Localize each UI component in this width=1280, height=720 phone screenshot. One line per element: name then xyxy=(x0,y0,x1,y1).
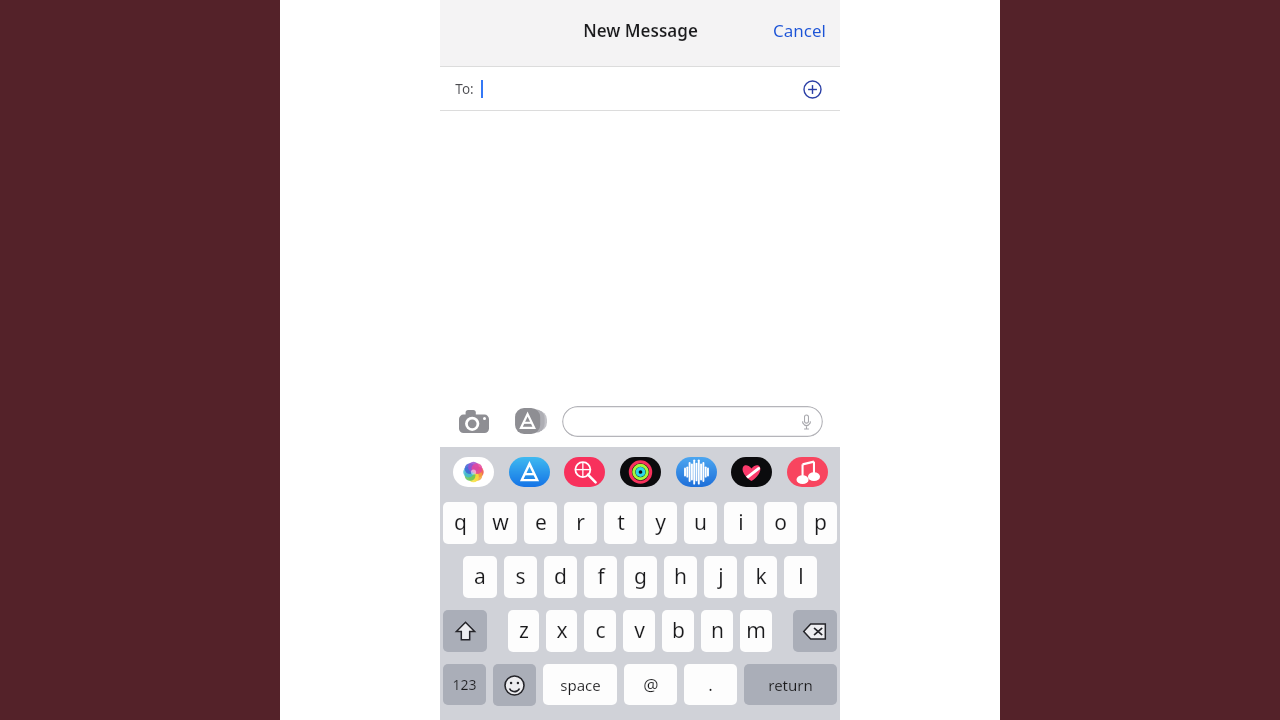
button[interactable]: Emoji xyxy=(493,664,536,706)
button[interactable]: x xyxy=(546,610,577,652)
button[interactable]: u xyxy=(684,502,717,544)
button[interactable]: j xyxy=(704,556,737,598)
staticText: To: xyxy=(455,80,474,98)
button[interactable]: c xyxy=(584,610,616,652)
button[interactable]: Fitness xyxy=(728,455,774,489)
button[interactable]: q xyxy=(443,502,477,544)
button[interactable]: Shift xyxy=(443,610,487,652)
staticText: r xyxy=(576,508,585,537)
staticText: i xyxy=(738,508,744,537)
staticText: return xyxy=(768,675,813,695)
button[interactable]: t xyxy=(604,502,637,544)
staticText: d xyxy=(554,562,567,591)
staticText: New Message xyxy=(583,19,698,42)
button[interactable]: n xyxy=(701,610,733,652)
button[interactable]: Activity xyxy=(617,455,663,489)
staticText: k xyxy=(755,562,767,591)
button[interactable]: p xyxy=(804,502,837,544)
staticText: a xyxy=(474,562,486,591)
staticText: s xyxy=(515,562,526,591)
button[interactable]: a xyxy=(463,556,497,598)
staticText: o xyxy=(774,508,787,537)
staticText: h xyxy=(674,562,687,591)
button[interactable]: o xyxy=(764,502,797,544)
button[interactable]: z xyxy=(508,610,539,652)
staticText: 123 xyxy=(452,675,477,694)
staticText: q xyxy=(454,508,467,537)
staticText: t xyxy=(617,508,625,537)
staticText: Cancel xyxy=(773,19,826,42)
staticText: y xyxy=(655,508,666,537)
staticText: b xyxy=(672,616,685,645)
button[interactable]: l xyxy=(784,556,817,598)
staticText: . xyxy=(708,673,713,696)
staticText: z xyxy=(519,616,529,645)
button[interactable] xyxy=(562,406,823,437)
button[interactable]: m xyxy=(740,610,772,652)
button[interactable]: . xyxy=(684,664,737,705)
button[interactable]: e xyxy=(524,502,557,544)
button[interactable]: s xyxy=(504,556,537,598)
button[interactable]: App Store xyxy=(506,455,552,489)
button[interactable]: Cancel xyxy=(759,10,840,51)
button[interactable]: y xyxy=(644,502,677,544)
button[interactable]: Backspace xyxy=(793,610,837,652)
staticText: g xyxy=(634,562,647,591)
staticText: j xyxy=(718,562,724,591)
button[interactable]: g xyxy=(624,556,657,598)
button[interactable]: @ xyxy=(624,664,677,705)
button[interactable]: h xyxy=(664,556,697,598)
staticText: p xyxy=(814,508,827,537)
staticText: e xyxy=(535,508,547,537)
button[interactable]: v xyxy=(623,610,655,652)
staticText: w xyxy=(492,508,509,537)
staticText: f xyxy=(597,562,605,591)
button[interactable]: Add contact xyxy=(795,72,829,106)
staticText: @ xyxy=(643,673,659,696)
staticText: v xyxy=(634,616,645,645)
staticText: c xyxy=(595,616,606,645)
staticText: u xyxy=(694,508,707,537)
button[interactable]: return xyxy=(744,664,837,705)
button[interactable]: Digital Touch xyxy=(673,455,719,489)
staticText: space xyxy=(560,675,601,695)
button[interactable]: f xyxy=(584,556,617,598)
button[interactable]: r xyxy=(564,502,597,544)
button[interactable]: w xyxy=(484,502,517,544)
button[interactable]: 123 xyxy=(443,664,486,705)
button[interactable]: Photos xyxy=(450,455,496,489)
button[interactable]: b xyxy=(662,610,694,652)
button[interactable]: Music xyxy=(784,455,830,489)
button[interactable]: i xyxy=(724,502,757,544)
staticText: n xyxy=(711,616,724,645)
button[interactable]: App Store xyxy=(513,404,547,438)
staticText: x xyxy=(556,616,568,645)
button[interactable]: k xyxy=(744,556,777,598)
button[interactable]: Camera xyxy=(457,404,491,438)
button[interactable]: Images xyxy=(561,455,607,489)
button[interactable]: d xyxy=(544,556,577,598)
button[interactable]: space xyxy=(543,664,617,705)
staticText: l xyxy=(798,562,804,591)
staticText: m xyxy=(746,616,766,645)
